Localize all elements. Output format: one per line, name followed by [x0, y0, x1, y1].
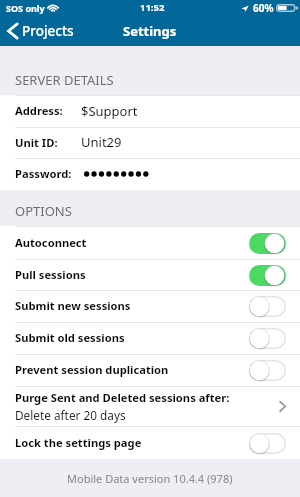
button[interactable]: Unit ID: [0, 128, 300, 158]
staticText: Unit ID: [15, 135, 58, 150]
staticText: Pull sessions [15, 267, 86, 282]
button[interactable]: Password: [0, 159, 300, 190]
staticText: Delete after 20 days [15, 407, 126, 423]
staticText: $Support [81, 102, 138, 120]
staticText: Unit29 [81, 133, 122, 151]
button[interactable]: Projects [0, 18, 82, 44]
button[interactable]: Submit old sessions [0, 323, 300, 354]
button[interactable]: Submit new sessions [0, 291, 300, 322]
button[interactable]: Autoconnect [0, 227, 300, 259]
button[interactable]: Address: [0, 96, 300, 127]
staticText: Address: [15, 103, 63, 118]
staticText: Autoconnect [15, 235, 87, 250]
staticText: SOS only [6, 2, 45, 14]
button[interactable]: Lock the settings page [0, 427, 300, 459]
staticText: Settings [123, 22, 177, 40]
staticText: Purge Sent and Deleted sessions after: [15, 390, 230, 405]
staticText: Submit new sessions [15, 298, 131, 313]
staticText: Projects [22, 22, 74, 40]
staticText: Mobile Data version 10.4.4 (978) [67, 471, 233, 486]
button[interactable]: Prevent session duplication [0, 355, 300, 386]
button[interactable]: Pull sessions [0, 260, 300, 290]
staticText: OPTIONS [15, 202, 72, 220]
staticText: SERVER DETAILS [15, 71, 114, 89]
staticText: 60% [253, 1, 274, 15]
staticText: Submit old sessions [15, 330, 125, 345]
staticText: Prevent session duplication [15, 362, 169, 377]
staticText: Password: [15, 166, 72, 181]
button[interactable]: Purge Sent and Deleted sessions after: [0, 387, 300, 426]
staticText: Lock the settings page [15, 435, 142, 450]
staticText: 11:52 [140, 1, 165, 14]
